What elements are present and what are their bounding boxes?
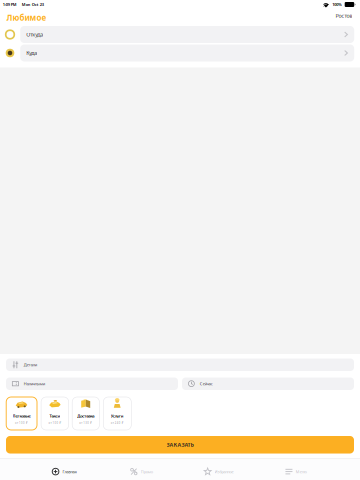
staticText: Такси	[49, 413, 60, 418]
button[interactable]: Главная	[25, 459, 103, 480]
staticText: Сейчас	[200, 381, 213, 386]
staticText: Промо	[141, 469, 153, 474]
staticText: Ростов	[335, 12, 352, 19]
button[interactable]: Избранное	[180, 459, 257, 480]
button[interactable]: Услуги	[103, 397, 131, 430]
staticText: от 130 ₽	[79, 421, 92, 425]
staticText: от 240 ₽	[111, 421, 124, 425]
button[interactable]: Детали	[6, 358, 354, 371]
button[interactable]: ЗАКАЗАТЬ	[6, 436, 354, 453]
button[interactable]: Легковые	[6, 397, 37, 430]
staticText: Легковые	[13, 413, 31, 418]
staticText: Откуда	[26, 31, 43, 38]
staticText: 1:09 PM	[3, 2, 17, 7]
button[interactable]: Сейчас	[182, 377, 354, 390]
button[interactable]: Любимое	[0, 10, 52, 25]
staticText: 100%	[332, 2, 342, 7]
button[interactable]: Наличными	[6, 377, 178, 390]
staticText: Доставка	[77, 413, 94, 418]
staticText: ЗАКАЗАТЬ	[166, 441, 193, 448]
staticText: Избранное	[215, 469, 234, 474]
staticText: Любимое	[6, 12, 46, 23]
button[interactable]: Промо	[103, 459, 180, 480]
button[interactable]: Такси	[41, 397, 69, 430]
button[interactable]: Меню	[257, 459, 335, 480]
button[interactable]: Ростов	[335, 10, 360, 25]
staticText: Куда	[26, 49, 37, 57]
staticText: Меню	[296, 469, 307, 474]
staticText: от 100 ₽	[15, 421, 28, 425]
staticText: Услуги	[111, 413, 124, 418]
staticText: Главная	[62, 469, 76, 474]
staticText: Mon Oct 23	[22, 2, 44, 7]
staticText: Детали	[24, 362, 37, 367]
button[interactable]: Куда	[0, 44, 360, 61]
staticText: Наличными	[24, 381, 45, 386]
staticText: от 100 ₽	[48, 421, 61, 425]
button[interactable]: Откуда	[0, 26, 360, 43]
button[interactable]: Доставка	[72, 397, 99, 430]
